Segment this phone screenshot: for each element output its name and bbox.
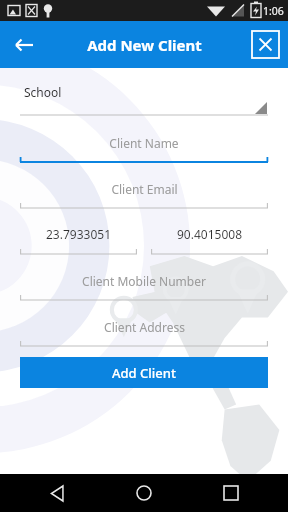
button[interactable]: Back	[6, 27, 42, 63]
button[interactable]: Back	[40, 476, 74, 510]
staticText: Client Email	[111, 181, 178, 197]
button[interactable]: 90.4015008	[151, 223, 268, 256]
staticText: Add Client	[112, 364, 176, 382]
staticText: 1:06	[263, 4, 284, 18]
staticText: Client Mobile Number	[82, 273, 206, 289]
staticText: 90.4015008	[177, 226, 242, 242]
button[interactable]: School	[20, 81, 268, 117]
button[interactable]: Close	[252, 31, 279, 58]
button[interactable]: Client Mobile Number	[20, 269, 268, 302]
button[interactable]: Client Name	[20, 131, 268, 164]
staticText: Add New Client	[87, 35, 202, 55]
button[interactable]: Recents	[214, 476, 248, 510]
button[interactable]: Add Client	[20, 357, 268, 388]
button[interactable]: Client Email	[20, 177, 268, 210]
staticText: School	[24, 84, 62, 100]
button[interactable]: Client Address	[20, 315, 268, 348]
button[interactable]: Home	[127, 476, 161, 510]
staticText: 23.7933051	[46, 226, 111, 242]
staticText: Client Address	[104, 319, 185, 335]
button[interactable]: 23.7933051	[20, 223, 137, 256]
staticText: Client Name	[109, 135, 179, 151]
